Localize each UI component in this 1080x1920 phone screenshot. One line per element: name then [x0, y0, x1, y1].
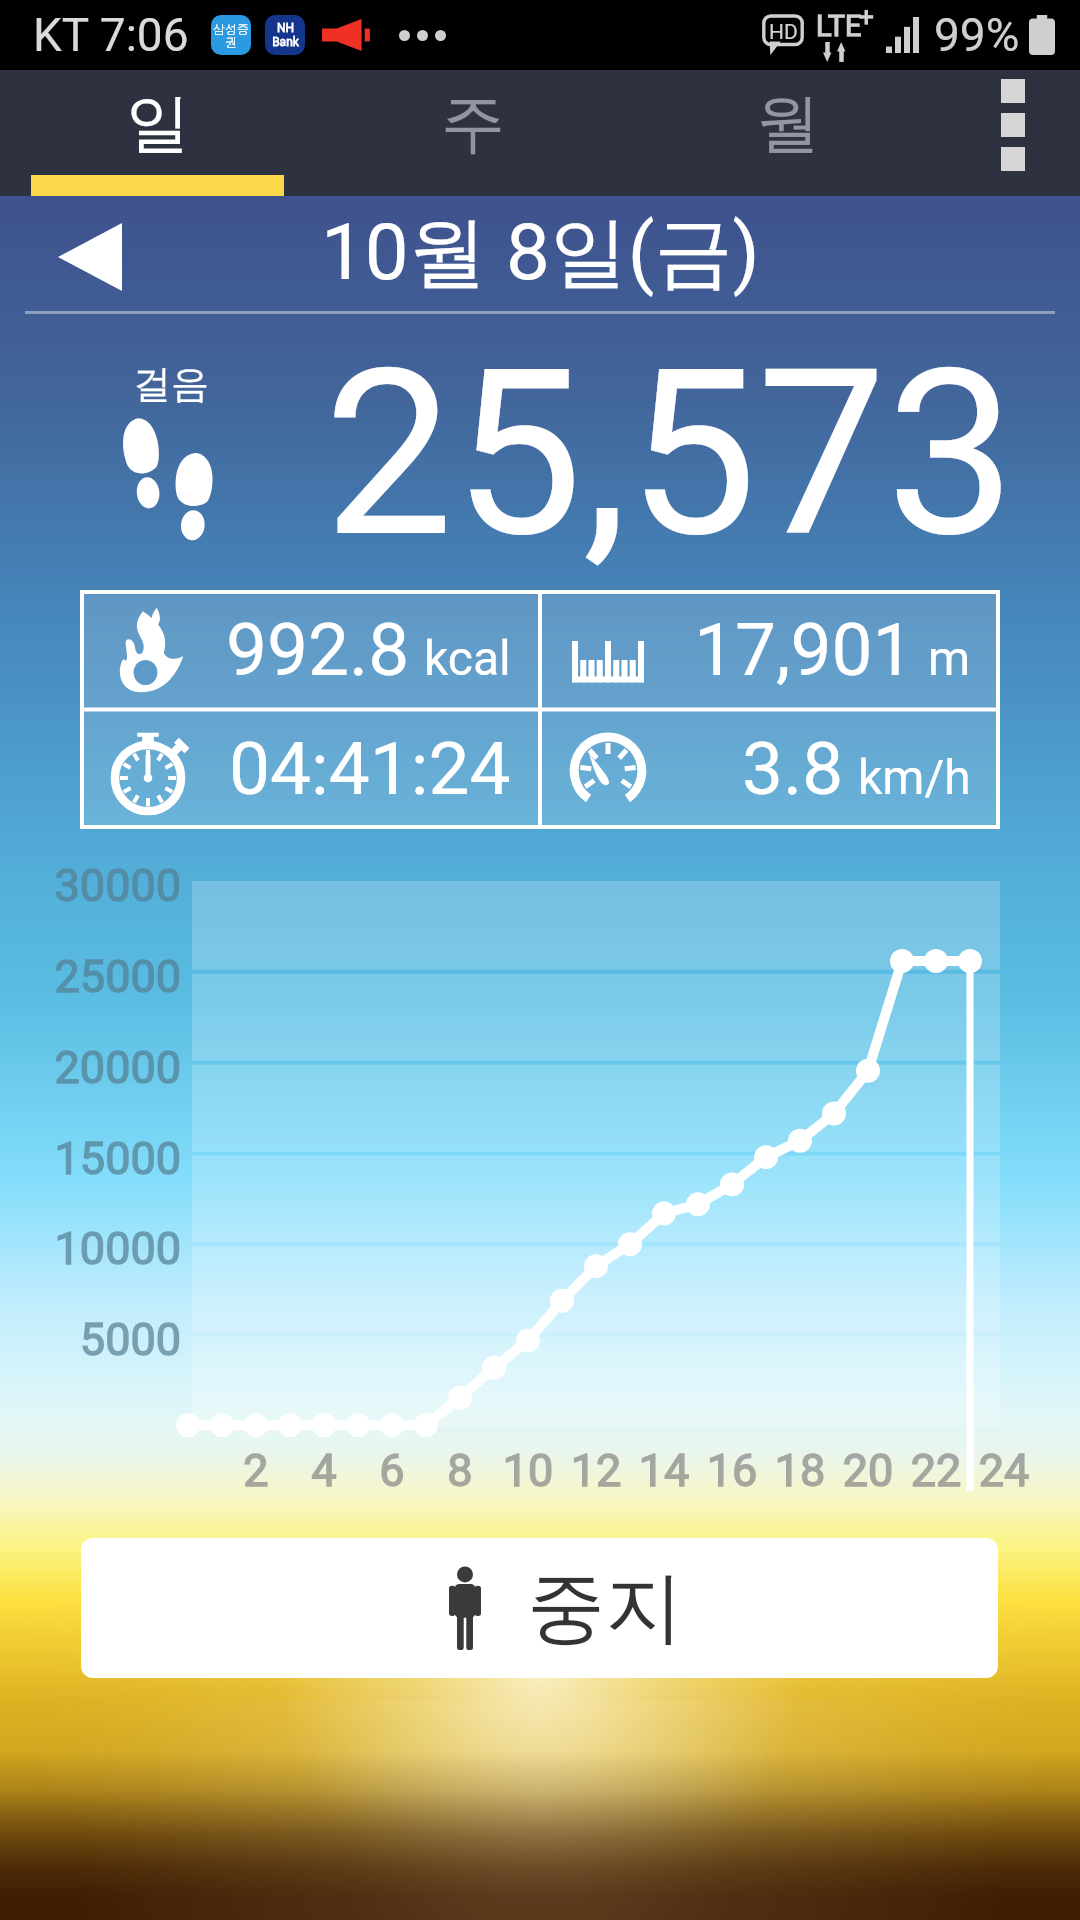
staticText: 10	[478, 1444, 578, 1497]
staticText: 99%	[934, 8, 1020, 62]
staticText: 25,573	[324, 320, 1016, 570]
button[interactable]: More options	[945, 70, 1080, 196]
staticText: 월	[756, 83, 820, 164]
staticText: LTE	[816, 9, 862, 43]
staticText: HD	[769, 20, 798, 45]
staticText: 삼성증권	[211, 21, 251, 49]
staticText: 12	[546, 1444, 646, 1497]
staticText: 2	[206, 1444, 306, 1497]
staticText: NH Bank	[272, 21, 299, 49]
staticText: 일	[126, 83, 190, 164]
button[interactable]: 3.8	[540, 709, 1000, 829]
staticText: 15000	[54, 1132, 181, 1185]
staticText: 걸음	[133, 360, 209, 408]
staticText: 24	[954, 1444, 1054, 1497]
button[interactable]: 992.8	[80, 590, 540, 709]
staticText: kcal	[424, 630, 511, 686]
staticText: 4	[274, 1444, 374, 1497]
button[interactable]: Previous day	[40, 207, 140, 307]
button[interactable]: 17,901	[540, 590, 1000, 709]
staticText: 8	[410, 1444, 510, 1497]
staticText: +	[859, 2, 874, 32]
button[interactable]: 월	[630, 70, 945, 196]
staticText: KT 7:06	[33, 8, 189, 62]
staticText: 14	[614, 1444, 714, 1497]
button[interactable]: 중지	[81, 1538, 998, 1678]
button[interactable]: 주	[315, 70, 630, 196]
staticText: 중지	[527, 1559, 683, 1657]
staticText: 10000	[54, 1222, 181, 1275]
staticText: 3.8	[742, 726, 844, 812]
button[interactable]: 일	[0, 70, 315, 196]
staticText: 6	[342, 1444, 442, 1497]
staticText: m	[928, 630, 971, 686]
staticText: 25000	[54, 950, 181, 1003]
staticText: 20	[818, 1444, 918, 1497]
staticText: 20000	[54, 1041, 181, 1094]
staticText: km/h	[858, 749, 971, 805]
staticText: 5000	[79, 1313, 181, 1366]
staticText: 04:41:24	[229, 726, 511, 812]
staticText: 16	[682, 1444, 782, 1497]
staticText: 18	[750, 1444, 850, 1497]
staticText: 30000	[54, 859, 181, 912]
staticText: 22	[886, 1444, 986, 1497]
staticText: 10월 8일(금)	[321, 204, 760, 302]
staticText: 17,901	[694, 607, 914, 693]
button[interactable]: 04:41:24	[80, 709, 540, 829]
staticText: 주	[441, 83, 505, 164]
staticText: 992.8	[226, 607, 410, 693]
